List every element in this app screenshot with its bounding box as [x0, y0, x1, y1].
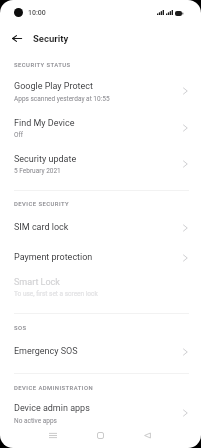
staticText: No active apps [14, 417, 57, 425]
button[interactable]: Home [90, 425, 111, 446]
staticText: Security [33, 33, 69, 44]
staticText: Device admin apps [14, 403, 90, 414]
staticText: DEVICE SECURITY [14, 201, 70, 208]
button[interactable]: SIM card lock [0, 214, 201, 238]
staticText: 5 February 2021 [14, 167, 61, 175]
staticText: Google Play Protect [14, 81, 93, 92]
button[interactable]: Payment protection [0, 244, 201, 268]
staticText: DEVICE ADMINISTRATION [14, 385, 94, 392]
button[interactable]: Security update [0, 146, 201, 176]
staticText: Off [14, 131, 23, 139]
button[interactable]: Find My Device [0, 110, 201, 140]
staticText: SIM card lock [14, 222, 69, 233]
staticText: Security update [14, 154, 77, 165]
staticText: Payment protection [14, 252, 93, 263]
staticText: To use, first set a screen lock [14, 290, 98, 298]
button[interactable]: Back [8, 29, 26, 47]
staticText: Find My Device [14, 118, 75, 129]
button[interactable]: Recent apps [42, 425, 63, 446]
button[interactable]: Device admin apps [0, 395, 201, 425]
staticText: 10:00 [28, 9, 46, 17]
staticText: SOS [14, 325, 27, 332]
staticText: Smart Lock [14, 277, 60, 288]
staticText: SECURITY STATUS [14, 62, 71, 69]
staticText: Apps scanned yesterday at 10:55 [14, 95, 110, 103]
staticText: Emergency SOS [14, 346, 78, 357]
button[interactable]: Smart Lock [0, 269, 201, 299]
button[interactable]: Back [137, 425, 158, 446]
button[interactable]: Google Play Protect [0, 73, 201, 103]
button[interactable]: Emergency SOS [0, 338, 201, 362]
